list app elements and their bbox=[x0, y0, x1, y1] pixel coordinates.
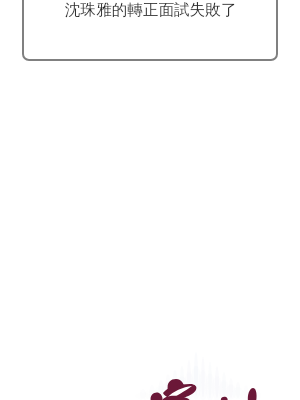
staticText: 沈珠雅的轉正面試失敗了 bbox=[65, 0, 237, 20]
button[interactable]: Comic page, tap to continue bbox=[0, 0, 300, 400]
